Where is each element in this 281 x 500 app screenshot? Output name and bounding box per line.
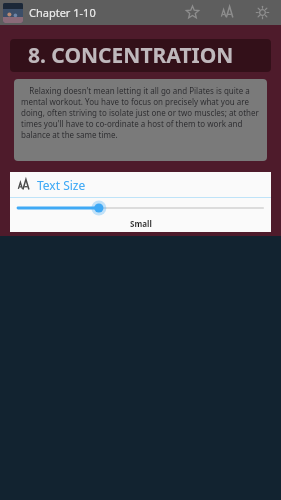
button[interactable]: Text size bbox=[215, 0, 240, 25]
staticText: Relaxing doesn't mean letting it all go … bbox=[21, 85, 260, 140]
button[interactable]: Brightness bbox=[250, 0, 275, 25]
button[interactable]: Favourite bbox=[180, 0, 205, 25]
staticText: Text Size bbox=[37, 177, 86, 193]
button[interactable]: 8. CONCENTRATION bbox=[10, 39, 271, 72]
staticText: Small bbox=[130, 218, 152, 229]
staticText: 8. CONCENTRATION bbox=[28, 41, 234, 70]
staticText: Chapter 1-10 bbox=[29, 5, 96, 20]
button[interactable]: Text size slider bbox=[10, 198, 271, 218]
button[interactable]: Relaxing doesn't mean letting it all go … bbox=[14, 79, 267, 161]
button[interactable]: App icon bbox=[3, 3, 23, 23]
button[interactable]: Text Size bbox=[10, 172, 271, 197]
